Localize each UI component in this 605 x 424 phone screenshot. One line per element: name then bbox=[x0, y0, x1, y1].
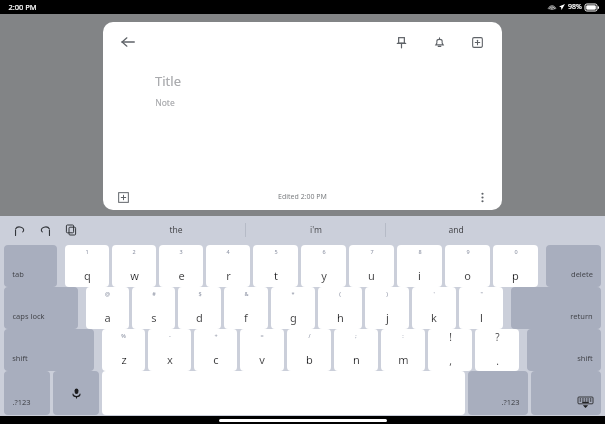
button[interactable]: Paste bbox=[62, 221, 80, 239]
button[interactable]: & bbox=[224, 287, 268, 329]
button[interactable]: Reminder bbox=[426, 29, 452, 55]
button[interactable]: 7 bbox=[349, 245, 394, 287]
button[interactable]: / bbox=[287, 329, 331, 371]
button[interactable]: 0 bbox=[493, 245, 538, 287]
staticText: f bbox=[244, 310, 248, 325]
staticText: = bbox=[260, 332, 264, 339]
staticText: 9 bbox=[466, 248, 470, 255]
button[interactable]: : bbox=[381, 329, 425, 371]
staticText: @ bbox=[105, 290, 110, 297]
button[interactable]: Add bbox=[113, 187, 133, 207]
staticText: 98% bbox=[568, 2, 582, 12]
button[interactable]: ) bbox=[365, 287, 409, 329]
button[interactable]: return bbox=[511, 287, 601, 329]
button[interactable]: ( bbox=[318, 287, 362, 329]
staticText: l bbox=[480, 310, 483, 325]
staticText: tab bbox=[12, 269, 24, 279]
staticText: ; bbox=[355, 332, 357, 339]
button[interactable]: Redo bbox=[36, 221, 54, 239]
button[interactable]: Archive bbox=[464, 29, 490, 55]
button[interactable]: - bbox=[148, 329, 191, 371]
button[interactable]: = bbox=[240, 329, 284, 371]
staticText: b bbox=[306, 352, 313, 367]
staticText: d bbox=[196, 310, 203, 325]
button[interactable]: " bbox=[459, 287, 503, 329]
staticText: * bbox=[291, 290, 295, 297]
staticText: + bbox=[214, 332, 218, 339]
button[interactable]: 4 bbox=[206, 245, 250, 287]
button[interactable]: and bbox=[386, 216, 525, 244]
staticText: 5 bbox=[274, 248, 278, 255]
button[interactable]: Undo bbox=[10, 221, 28, 239]
staticText: - bbox=[169, 332, 171, 339]
staticText: n bbox=[353, 352, 360, 367]
staticText: e bbox=[178, 268, 185, 283]
button[interactable]: tab bbox=[4, 245, 57, 287]
button[interactable]: 2 bbox=[112, 245, 156, 287]
button[interactable]: ; bbox=[334, 329, 378, 371]
staticText: j bbox=[386, 310, 389, 325]
button[interactable]: More options bbox=[472, 187, 492, 207]
staticText: k bbox=[431, 310, 437, 325]
button[interactable]: Back bbox=[115, 29, 141, 55]
staticText: c bbox=[213, 352, 219, 367]
staticText: Note bbox=[155, 97, 175, 109]
button[interactable]: ! bbox=[428, 329, 472, 371]
staticText: 2:00 PM bbox=[8, 2, 37, 12]
staticText: . bbox=[496, 354, 499, 368]
button[interactable]: Voice input bbox=[53, 371, 99, 415]
staticText: and bbox=[448, 224, 464, 236]
staticText: ) bbox=[386, 290, 388, 297]
staticText: s bbox=[151, 310, 157, 325]
button[interactable]: 3 bbox=[159, 245, 203, 287]
staticText: .?123 bbox=[12, 397, 31, 407]
button[interactable]: 5 bbox=[253, 245, 298, 287]
staticText: u bbox=[368, 268, 375, 283]
staticText: / bbox=[308, 332, 311, 339]
staticText: q bbox=[84, 268, 91, 283]
staticText: .?123 bbox=[501, 397, 520, 407]
staticText: $ bbox=[198, 290, 202, 297]
button[interactable]: the bbox=[106, 216, 245, 244]
button[interactable]: .?123 bbox=[4, 371, 50, 415]
staticText: w bbox=[130, 268, 139, 283]
staticText: delete bbox=[571, 269, 593, 279]
button[interactable]: .?123 bbox=[468, 371, 528, 415]
staticText: 6 bbox=[322, 248, 326, 255]
button[interactable]: Note bbox=[155, 97, 502, 109]
button[interactable]: 6 bbox=[301, 245, 346, 287]
button[interactable]: * bbox=[271, 287, 315, 329]
staticText: 1 bbox=[85, 248, 89, 255]
button[interactable]: shift bbox=[527, 329, 601, 371]
staticText: : bbox=[402, 332, 404, 339]
button[interactable]: Hide keyboard bbox=[531, 371, 601, 415]
button[interactable]: caps lock bbox=[4, 287, 78, 329]
staticText: 4 bbox=[226, 248, 230, 255]
staticText: m bbox=[398, 352, 409, 367]
staticText: 7 bbox=[370, 248, 374, 255]
button[interactable]: i'm bbox=[246, 216, 385, 244]
staticText: z bbox=[121, 352, 127, 367]
button[interactable]: 9 bbox=[445, 245, 490, 287]
button[interactable]: ' bbox=[412, 287, 456, 329]
button[interactable]: % bbox=[102, 329, 145, 371]
button[interactable]: Pin bbox=[388, 29, 414, 55]
button[interactable]: 8 bbox=[397, 245, 442, 287]
button[interactable]: delete bbox=[546, 245, 601, 287]
button[interactable]: @ bbox=[86, 287, 129, 329]
button[interactable]: # bbox=[132, 287, 175, 329]
button[interactable]: shift bbox=[4, 329, 94, 371]
button[interactable]: + bbox=[194, 329, 237, 371]
button[interactable]: 1 bbox=[65, 245, 109, 287]
staticText: # bbox=[152, 290, 156, 297]
button[interactable]: ? bbox=[475, 329, 519, 371]
staticText: v bbox=[259, 352, 265, 367]
staticText: x bbox=[167, 352, 173, 367]
staticText: 3 bbox=[179, 248, 183, 255]
staticText: shift bbox=[12, 353, 28, 363]
button[interactable]: $ bbox=[178, 287, 221, 329]
button[interactable]: Title bbox=[155, 72, 502, 90]
staticText: 0 bbox=[514, 248, 518, 255]
staticText: the bbox=[169, 224, 183, 236]
